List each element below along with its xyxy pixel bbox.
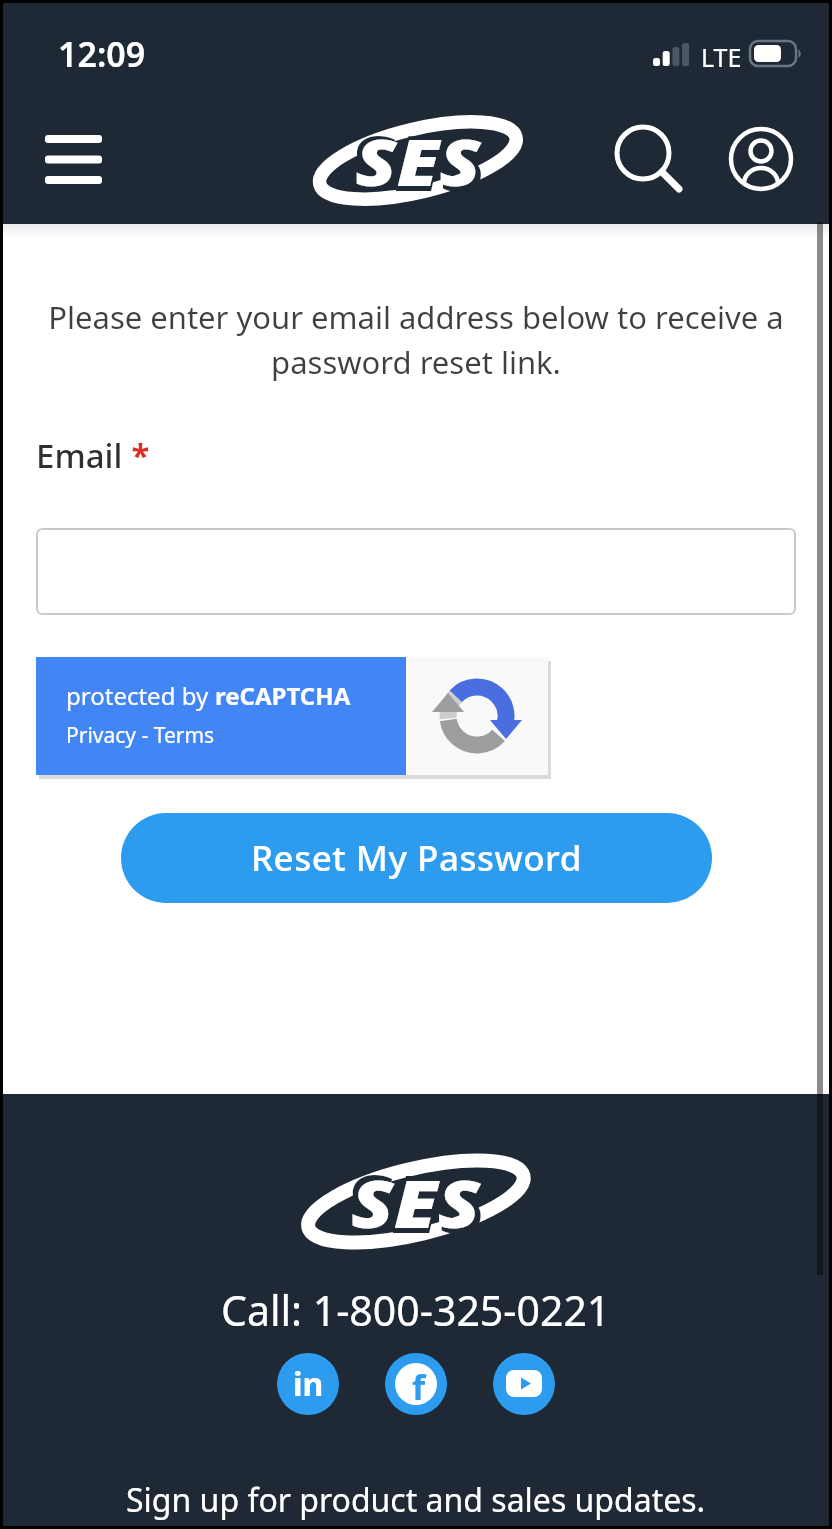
staticText: Email (36, 433, 123, 478)
staticText: SES (351, 1157, 481, 1247)
staticText: f (412, 1364, 426, 1410)
button[interactable] (605, 117, 695, 207)
button[interactable] (493, 1353, 555, 1415)
button[interactable]: protected by (36, 657, 406, 775)
staticText: Sign up for product and sales updates. (126, 1478, 706, 1522)
button[interactable] (31, 118, 115, 200)
staticText: SES (349, 109, 488, 214)
staticText: Reset My Password (251, 834, 582, 882)
staticText: reCAPTCHA (215, 679, 351, 712)
button[interactable] (721, 119, 801, 199)
staticText: protected by (66, 679, 215, 712)
button[interactable]: Reset My Password (121, 813, 712, 903)
staticText: Please enter your email address below to… (3, 296, 829, 383)
staticText: SES (355, 118, 482, 205)
button[interactable]: f (385, 1353, 447, 1415)
staticText: 12:09 (58, 31, 146, 77)
staticText: in (293, 1362, 324, 1406)
staticText: Privacy - Terms (66, 721, 215, 750)
staticText: LTE (701, 40, 742, 74)
button[interactable] (36, 528, 796, 615)
button[interactable]: SES (314, 111, 522, 211)
button[interactable]: Call: 1-800-325-0221 (221, 1282, 611, 1338)
button[interactable]: in (277, 1353, 339, 1415)
staticText: SES (344, 1148, 487, 1256)
staticText: * (123, 433, 150, 478)
